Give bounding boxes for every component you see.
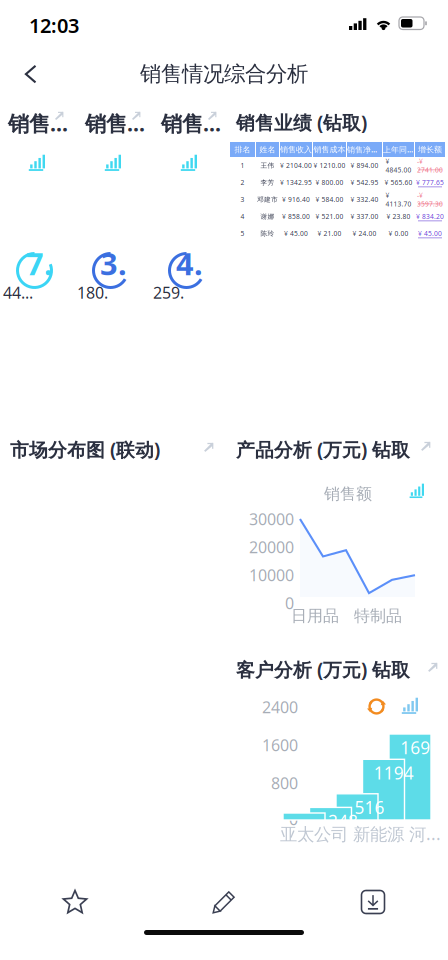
staticText: 王伟 <box>260 161 274 170</box>
staticText: 2 <box>240 178 244 187</box>
staticText: 销售... <box>8 109 68 137</box>
staticText: 销售情况综合分析 <box>140 61 308 87</box>
staticText: ¥ 4113.70 <box>385 191 411 208</box>
staticText: ¥ 21.00 <box>317 229 341 238</box>
button[interactable]: 客户分析 (万元) 钻取 <box>228 654 448 874</box>
staticText: 516 <box>354 796 384 819</box>
button[interactable]: 产品分析 (万元) 钻取 <box>228 434 448 646</box>
staticText: 1600 <box>262 734 298 756</box>
staticText: 259. <box>153 282 184 303</box>
staticText: 3 <box>240 195 244 204</box>
staticText: 姓名 <box>259 145 275 154</box>
button[interactable]: 销售业绩 (钻取) <box>228 104 448 404</box>
staticText: ¥ 542.95 <box>350 178 378 187</box>
staticText: 销售... <box>85 109 145 137</box>
staticText: 30000 <box>249 508 294 530</box>
button[interactable]: 市场分布图 (联动) <box>0 434 228 876</box>
staticText: ¥ 1342.95 <box>280 178 312 187</box>
staticText: ¥ 337.00 <box>350 212 378 221</box>
staticText: 邓建市 <box>257 195 278 204</box>
button[interactable]: 销售... <box>76 104 152 404</box>
staticText: 销售收入 <box>280 145 312 154</box>
staticText: 1 <box>240 161 244 170</box>
button[interactable]: Favorite <box>0 0 50 44</box>
staticText: 12:03 <box>29 12 79 39</box>
staticText: ¥ 916.40 <box>282 195 310 204</box>
staticText: 增长额 <box>418 145 442 154</box>
staticText: 特制品 <box>354 606 402 626</box>
button[interactable]: Back <box>0 0 50 44</box>
button[interactable]: 销售... <box>152 104 228 404</box>
staticText: 20000 <box>249 536 294 558</box>
staticText: 1194 <box>374 761 414 784</box>
staticText: 180. <box>77 282 108 303</box>
staticText: ¥ 834.20 <box>416 212 444 221</box>
button[interactable]: 销售... <box>0 104 76 404</box>
staticText: 4. <box>176 243 203 284</box>
staticText: ¥ 45.00 <box>284 229 308 238</box>
staticText: ¥ 24.00 <box>352 229 376 238</box>
staticText: 陈玲 <box>260 229 274 238</box>
staticText: 销售... <box>161 109 221 137</box>
staticText: ¥ 4845.00 <box>385 157 411 174</box>
staticText: 日用品 <box>291 606 339 626</box>
staticText: 5 <box>240 229 244 238</box>
staticText: 客户分析 (万元) 钻取 <box>236 657 410 682</box>
staticText: ¥ 858.00 <box>282 212 310 221</box>
staticText: ¥ 0.00 <box>388 229 408 238</box>
staticText: 上年同期 <box>383 144 414 155</box>
staticText: ¥ 565.60 <box>384 178 412 187</box>
staticText: 销售额 <box>324 484 372 504</box>
staticText: 7. <box>26 243 53 284</box>
staticText: 销售净利润 <box>347 144 382 155</box>
staticText: 248 <box>328 809 358 832</box>
staticText: ¥ 23.80 <box>386 212 410 221</box>
staticText: 李芳 <box>260 178 274 187</box>
staticText: 谢娜 <box>260 212 274 221</box>
staticText: ¥ 777.65 <box>416 178 444 187</box>
staticText: 0 <box>285 592 294 614</box>
staticText: 4 <box>240 212 244 221</box>
staticText: 销售成本 <box>313 145 345 154</box>
staticText: ¥ 1210.00 <box>313 161 345 170</box>
staticText: 1692 <box>400 736 440 759</box>
staticText: 44... <box>3 282 33 303</box>
staticText: 排名 <box>234 145 250 154</box>
staticText: ¥ 2104.00 <box>280 161 312 170</box>
staticText: 销售业绩 (钻取) <box>236 110 367 135</box>
staticText: ¥ 45.00 <box>418 229 442 238</box>
staticText: 产品分析 (万元) 钻取 <box>236 437 410 462</box>
staticText: 10000 <box>249 564 294 586</box>
staticText: 市场分布图 (联动) <box>10 437 160 462</box>
staticText: -¥ 3597.30 <box>417 191 443 208</box>
staticText: 0 <box>289 808 298 830</box>
staticText: ¥ 800.00 <box>315 178 343 187</box>
staticText: ¥ 894.00 <box>350 161 378 170</box>
staticText: ¥ 521.00 <box>315 212 343 221</box>
staticText: 800 <box>271 772 298 794</box>
button[interactable]: Edit <box>0 0 50 44</box>
staticText: 3. <box>100 243 127 284</box>
staticText: 2400 <box>262 696 298 718</box>
staticText: 44 <box>309 815 329 838</box>
button[interactable]: Download <box>0 0 50 44</box>
staticText: -¥ 2741.00 <box>417 157 443 174</box>
staticText: ¥ 584.00 <box>315 195 343 204</box>
staticText: 亚太公司 新能源 河南 广东 <box>280 822 448 845</box>
staticText: ¥ 332.40 <box>350 195 378 204</box>
